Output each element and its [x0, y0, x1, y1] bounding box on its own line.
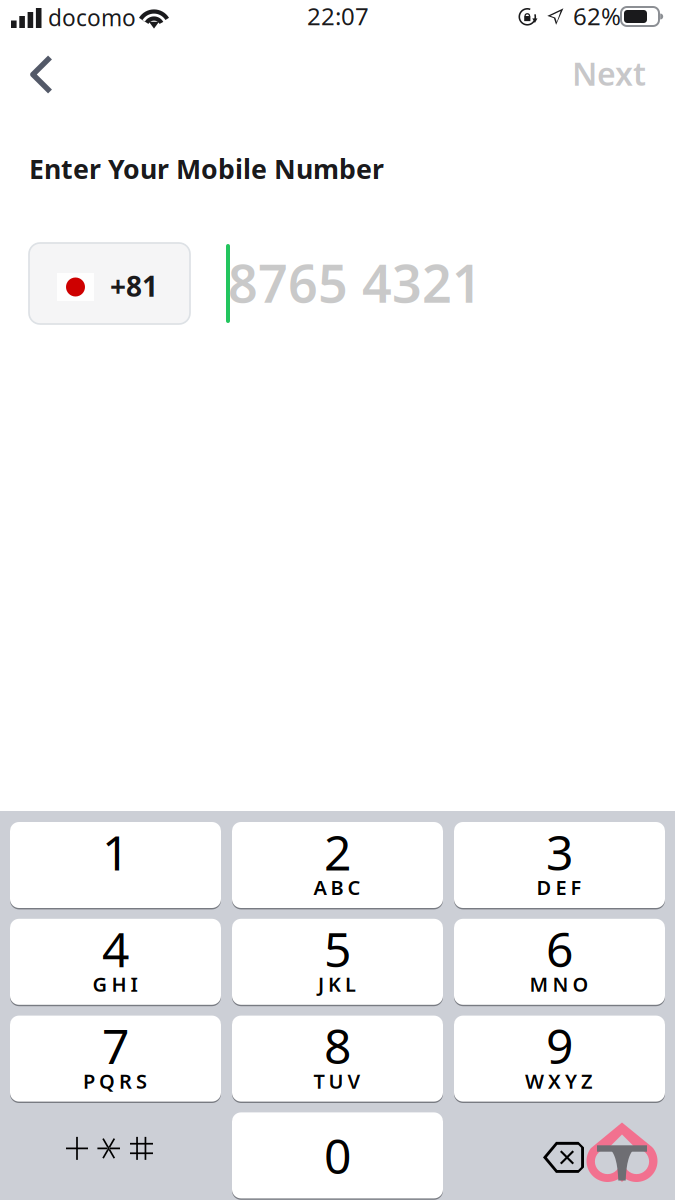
staticText: 62% [573, 0, 621, 32]
staticText: 6 [546, 917, 573, 980]
staticText: Next [572, 52, 646, 94]
staticText: WXYZ [525, 1068, 593, 1094]
button[interactable]: 1 [10, 822, 221, 908]
button[interactable]: Delete [454, 1112, 665, 1198]
button[interactable]: 3 [454, 822, 665, 908]
staticText: docomo [48, 2, 136, 33]
button[interactable]: 6 [454, 919, 665, 1005]
staticText: Enter Your Mobile Number [29, 151, 384, 186]
button[interactable]: 4 [10, 919, 221, 1005]
staticText: DEF [536, 874, 581, 901]
staticText: 1 [102, 820, 129, 884]
staticText: GHI [92, 971, 137, 997]
staticText: 7 [102, 1014, 129, 1077]
staticText: 3 [546, 820, 573, 884]
button[interactable]: +81 [29, 243, 190, 324]
staticText: JKL [318, 971, 356, 997]
staticText: 5 [324, 917, 351, 980]
button[interactable]: 7 [10, 1016, 221, 1102]
button[interactable]: Next [525, 40, 675, 96]
staticText: 4 [102, 917, 129, 980]
staticText: 8 [324, 1014, 351, 1077]
staticText: +81 [110, 267, 158, 305]
staticText: ABC [313, 874, 360, 901]
staticText: 0 [324, 1123, 351, 1187]
staticText: 2 [324, 820, 351, 884]
button[interactable]: 9 [454, 1016, 665, 1102]
button[interactable]: 8 [232, 1016, 443, 1102]
staticText: 8765 4321 [228, 248, 482, 317]
staticText: PQRS [83, 1068, 147, 1094]
button[interactable]: 5 [232, 919, 443, 1005]
button[interactable]: 0 [232, 1112, 443, 1198]
button[interactable]: 2 [232, 822, 443, 908]
staticText: MNO [529, 971, 588, 997]
button[interactable]: Symbols [10, 1112, 221, 1198]
staticText: 22:07 [307, 0, 369, 32]
staticText: 9 [546, 1014, 573, 1077]
button[interactable]: Back [9, 40, 71, 96]
staticText: TUV [313, 1068, 360, 1094]
